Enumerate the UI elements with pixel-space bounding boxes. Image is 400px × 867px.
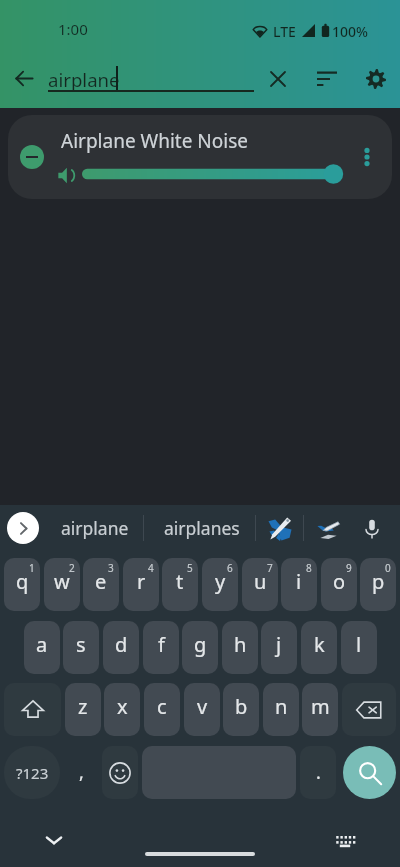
button[interactable]: Backspace: [342, 683, 396, 736]
button[interactable]: w: [44, 558, 80, 611]
button[interactable]: b: [223, 683, 259, 736]
button[interactable]: Hide keyboard: [34, 820, 74, 860]
button[interactable]: z: [65, 683, 101, 736]
button[interactable]: e: [83, 558, 119, 611]
button[interactable]: More suggestions: [7, 512, 39, 544]
button[interactable]: v: [184, 683, 220, 736]
button[interactable]: Settings: [356, 59, 396, 99]
button[interactable]: Sort: [307, 59, 347, 99]
button[interactable]: f: [143, 621, 179, 674]
staticText: 3: [108, 561, 114, 575]
staticText: 9: [346, 561, 352, 575]
button[interactable]: l: [341, 621, 377, 674]
staticText: r: [137, 568, 146, 595]
staticText: airplane: [48, 67, 120, 92]
button[interactable]: g: [182, 621, 218, 674]
button[interactable]: Airplane emoji: [258, 505, 302, 553]
button[interactable]: Voice input: [350, 505, 394, 553]
staticText: z: [78, 693, 88, 720]
staticText: l: [356, 631, 362, 658]
staticText: i: [296, 568, 302, 595]
button[interactable]: t: [162, 558, 198, 611]
button[interactable]: .: [300, 746, 336, 799]
button[interactable]: r: [123, 558, 159, 611]
staticText: p: [372, 568, 385, 595]
staticText: y: [215, 568, 226, 595]
button[interactable]: y: [202, 558, 238, 611]
button[interactable]: Switch keyboard: [325, 820, 365, 860]
button[interactable]: q: [4, 558, 40, 611]
button[interactable]: h: [222, 621, 258, 674]
button[interactable]: Remove: [20, 145, 44, 169]
button[interactable]: Back: [4, 58, 44, 98]
staticText: 4: [148, 561, 154, 575]
button[interactable]: Search: [343, 746, 396, 799]
staticText: 1:00: [58, 19, 88, 39]
button[interactable]: Airplane departure emoji: [306, 505, 350, 553]
staticText: 100%: [332, 22, 368, 41]
staticText: m: [311, 693, 330, 720]
staticText: 8: [306, 561, 312, 575]
staticText: 0: [385, 561, 391, 575]
staticText: b: [235, 693, 248, 720]
staticText: 1: [29, 561, 35, 575]
button[interactable]: p: [360, 558, 396, 611]
staticText: u: [254, 568, 267, 595]
button[interactable]: c: [144, 683, 180, 736]
staticText: airplanes: [164, 516, 240, 540]
staticText: f: [158, 631, 165, 658]
staticText: airplane: [61, 516, 129, 540]
button[interactable]: a: [24, 621, 60, 674]
staticText: k: [314, 631, 325, 658]
button[interactable]: u: [242, 558, 278, 611]
button[interactable]: ?123: [4, 746, 60, 799]
button[interactable]: More options: [352, 142, 382, 172]
staticText: c: [157, 693, 167, 720]
button[interactable]: n: [263, 683, 299, 736]
button[interactable]: airplanes: [149, 505, 255, 553]
staticText: x: [117, 693, 128, 720]
staticText: 7: [267, 561, 273, 575]
button[interactable]: Clear search: [258, 59, 298, 99]
staticText: a: [36, 631, 48, 658]
staticText: 5: [187, 561, 193, 575]
button[interactable]: i: [281, 558, 317, 611]
staticText: LTE: [273, 22, 296, 41]
staticText: g: [194, 631, 207, 658]
button[interactable]: Remove: [8, 115, 392, 199]
staticText: o: [333, 568, 346, 595]
button[interactable]: airplane: [46, 505, 143, 553]
staticText: Airplane White Noise: [61, 128, 249, 154]
staticText: d: [115, 631, 128, 658]
button[interactable]: k: [301, 621, 337, 674]
staticText: v: [197, 693, 208, 720]
button[interactable]: j: [261, 621, 297, 674]
staticText: 6: [227, 561, 233, 575]
staticText: s: [76, 631, 86, 658]
button[interactable]: m: [302, 683, 338, 736]
staticText: t: [176, 568, 184, 595]
staticText: h: [234, 631, 247, 658]
button[interactable]: x: [104, 683, 140, 736]
staticText: w: [54, 568, 70, 595]
staticText: ?123: [16, 763, 49, 783]
button[interactable]: Emoji: [102, 746, 138, 799]
staticText: e: [95, 568, 107, 595]
staticText: .: [316, 760, 321, 785]
staticText: 2: [69, 561, 75, 575]
button[interactable]: Search query: [48, 62, 256, 94]
button[interactable]: Shift: [4, 683, 61, 736]
button[interactable]: d: [103, 621, 139, 674]
button[interactable]: ,: [63, 746, 99, 799]
button[interactable]: o: [321, 558, 357, 611]
button[interactable]: s: [63, 621, 99, 674]
staticText: n: [275, 693, 288, 720]
staticText: q: [16, 568, 29, 595]
staticText: j: [276, 631, 282, 658]
staticText: ,: [79, 760, 84, 785]
